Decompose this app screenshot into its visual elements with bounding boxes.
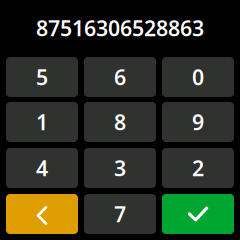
staticText: 7 <box>114 200 126 228</box>
staticText: 8 <box>114 108 126 136</box>
staticText: 5 <box>36 63 48 91</box>
button[interactable]: 6 <box>84 57 156 97</box>
button[interactable]: 9 <box>162 102 234 142</box>
staticText: 4 <box>36 154 48 182</box>
staticText: 0 <box>192 63 204 91</box>
staticText: 9 <box>192 108 204 136</box>
staticText: 3 <box>114 154 126 182</box>
button[interactable]: 5 <box>6 57 78 97</box>
button[interactable]: Confirm <box>162 194 234 234</box>
staticText: 2 <box>192 154 204 182</box>
staticText: 1 <box>36 108 48 136</box>
button[interactable]: 1 <box>6 102 78 142</box>
button[interactable]: 3 <box>84 148 156 188</box>
button[interactable]: 2 <box>162 148 234 188</box>
staticText: 6 <box>114 63 126 91</box>
button[interactable]: Delete <box>6 194 78 234</box>
button[interactable]: 8 <box>84 102 156 142</box>
button[interactable]: 0 <box>162 57 234 97</box>
button[interactable]: 7 <box>84 194 156 234</box>
button[interactable]: 4 <box>6 148 78 188</box>
staticText: 87516306528863 <box>36 14 204 42</box>
